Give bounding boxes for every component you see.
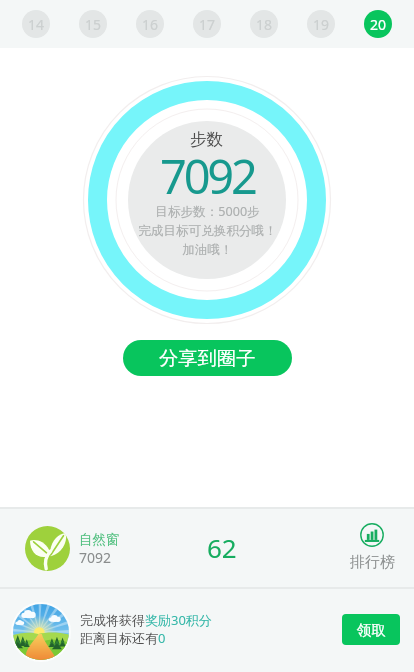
staticText: 19 <box>313 15 330 34</box>
staticText: 16 <box>142 15 159 34</box>
button[interactable]: 排行榜 <box>344 523 400 572</box>
staticText: 领取 <box>357 621 386 639</box>
staticText: 排行榜 <box>350 553 395 572</box>
button[interactable]: 17 <box>193 10 221 38</box>
staticText: 步数 <box>190 129 224 150</box>
staticText: 14 <box>28 15 45 34</box>
staticText: 15 <box>85 15 102 34</box>
staticText: 自然窗 <box>79 531 120 548</box>
button[interactable]: 14 <box>22 10 50 38</box>
button[interactable]: 20 <box>364 10 392 38</box>
button[interactable]: 15 <box>79 10 107 38</box>
staticText: 目标步数：5000步 完成目标可兑换积分哦！ 加油哦！ <box>138 203 277 258</box>
staticText: 18 <box>256 15 273 34</box>
button[interactable]: 16 <box>136 10 164 38</box>
button[interactable]: 分享到圈子 <box>123 340 292 376</box>
staticText: 分享到圈子 <box>159 346 256 370</box>
button[interactable]: 19 <box>307 10 335 38</box>
staticText: 20 <box>370 15 387 34</box>
staticText: 7092 <box>79 548 112 567</box>
staticText: 17 <box>199 15 216 34</box>
button[interactable]: 18 <box>250 10 278 38</box>
staticText: 62 <box>207 530 237 565</box>
button[interactable] <box>25 526 70 571</box>
staticText: 距离目标还有0 <box>80 629 166 647</box>
staticText: 7092 <box>160 144 255 208</box>
button[interactable]: 领取 <box>342 614 400 645</box>
staticText: 完成将获得奖励30积分 <box>80 611 212 629</box>
